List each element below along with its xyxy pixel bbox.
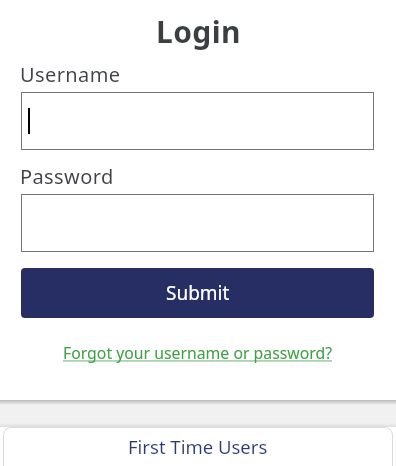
staticText: Login <box>156 11 241 52</box>
button[interactable]: Submit <box>21 268 374 318</box>
button[interactable]: First Time Users <box>3 427 393 466</box>
staticText: First Time Users <box>128 434 268 459</box>
staticText: Username <box>20 61 121 88</box>
button[interactable]: Forgot your username or password? <box>63 342 333 364</box>
button[interactable] <box>21 194 374 252</box>
button[interactable] <box>21 92 374 150</box>
staticText: Submit <box>166 280 230 306</box>
staticText: Password <box>20 163 114 190</box>
